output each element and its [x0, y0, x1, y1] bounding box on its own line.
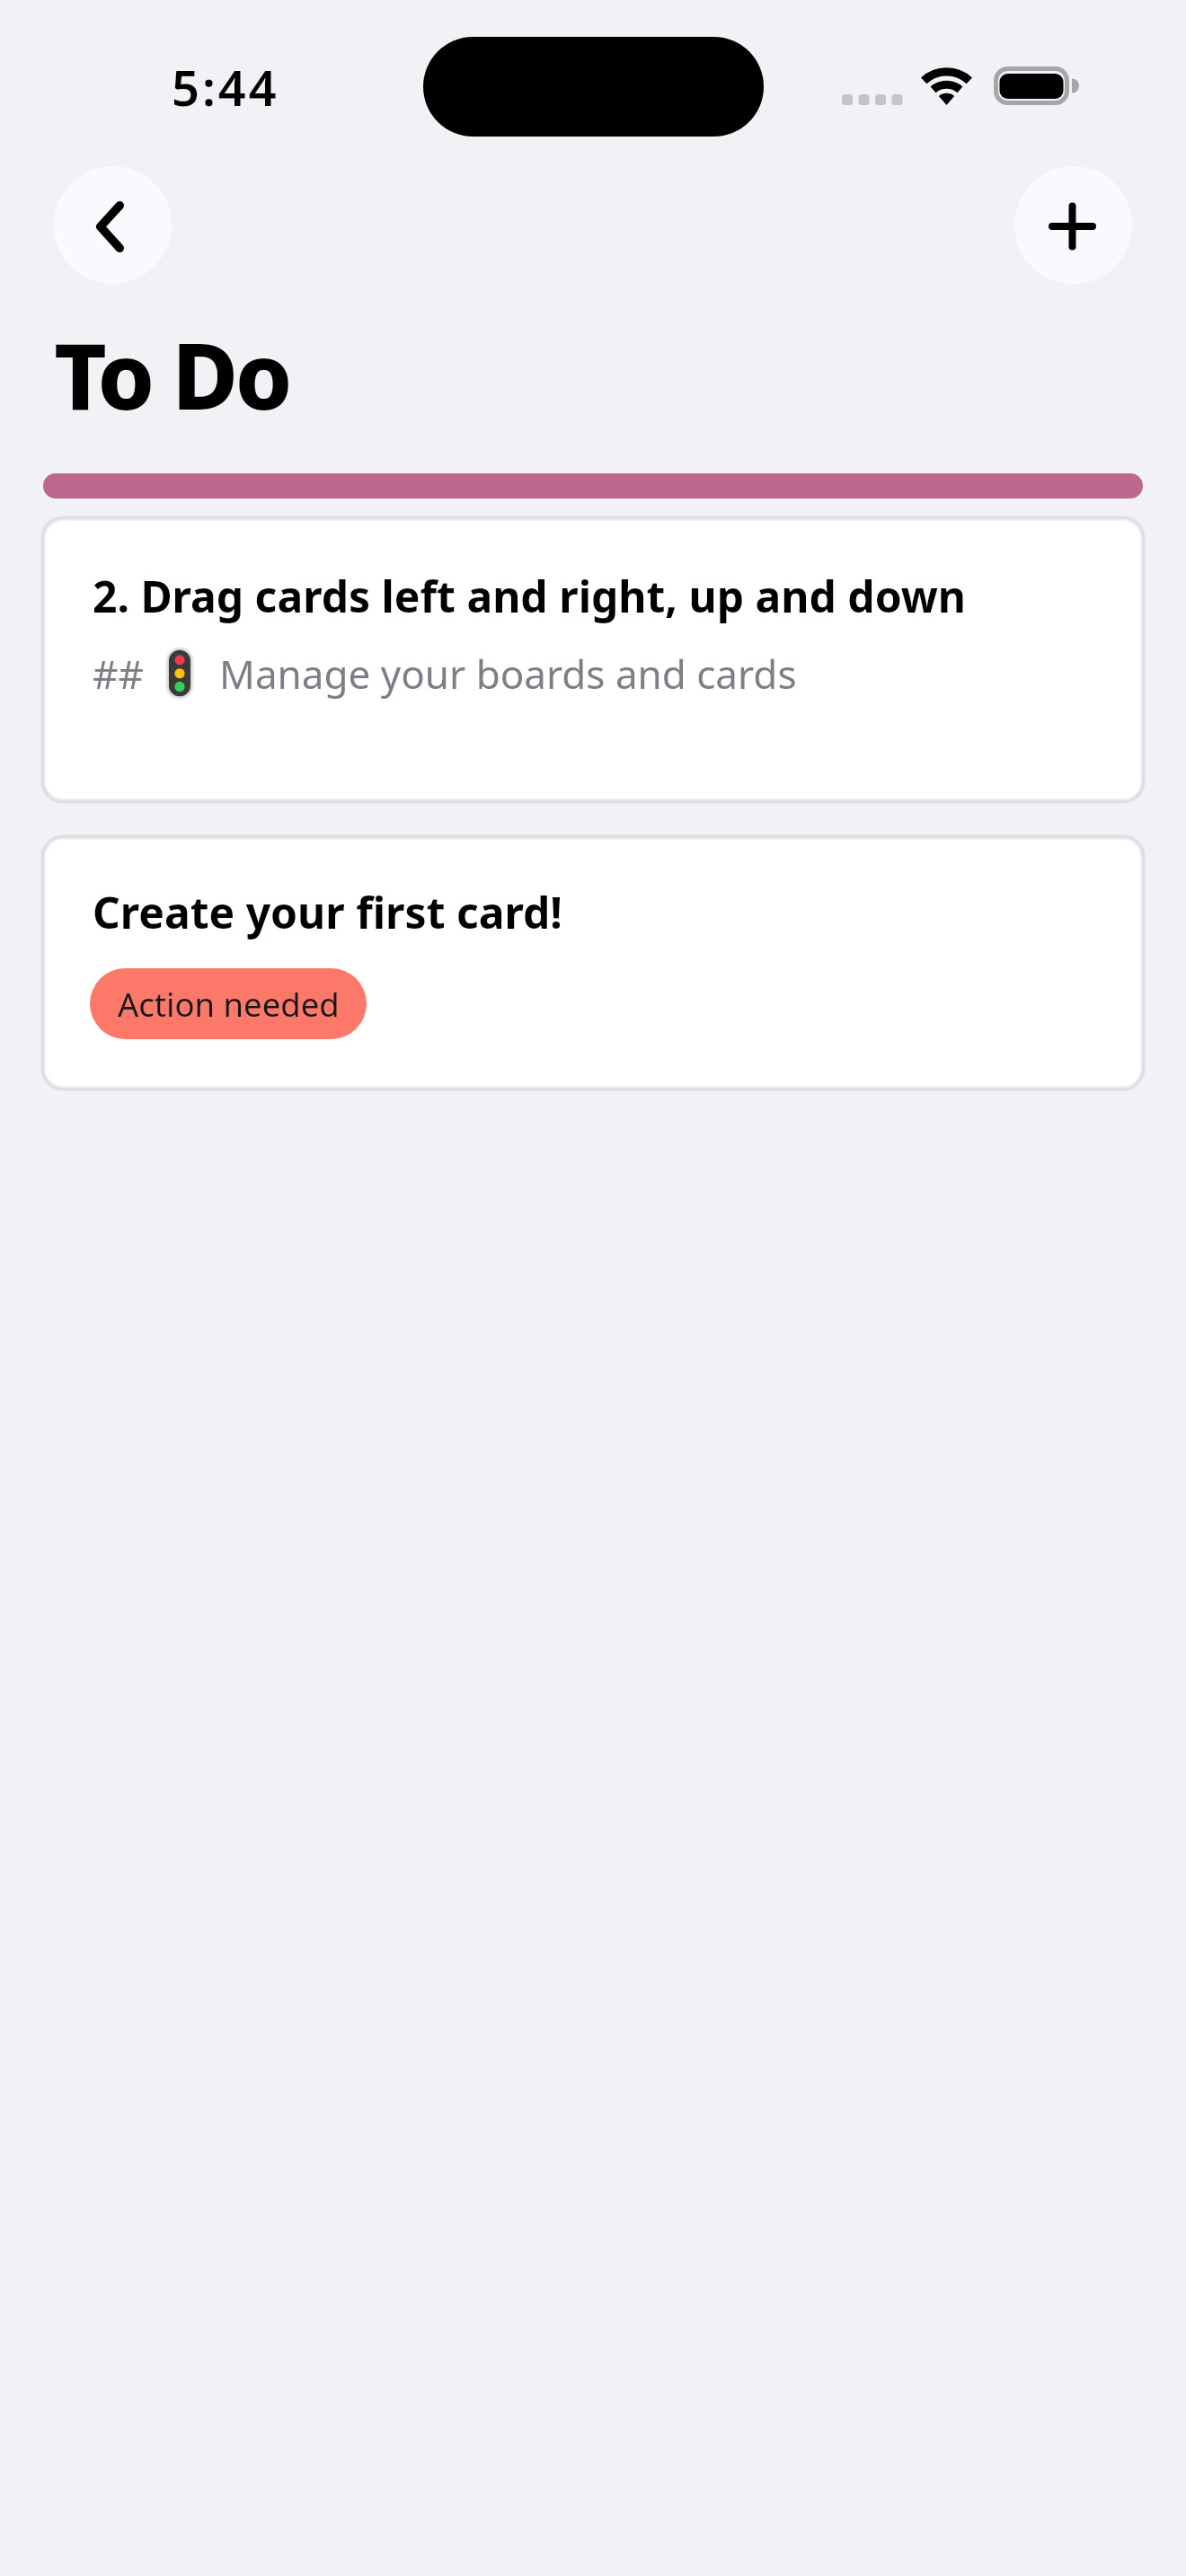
button[interactable]: Action needed: [90, 968, 367, 1039]
staticText: 2. Drag cards left and right, up and dow…: [93, 567, 966, 625]
staticText: To Do: [54, 313, 289, 437]
staticText: Manage your boards and cards: [219, 647, 797, 701]
button[interactable]: Create your first card!: [43, 837, 1143, 1089]
staticText: 5:44: [172, 54, 279, 120]
button[interactable]: Back: [54, 166, 172, 284]
button[interactable]: List colour: [43, 473, 1143, 498]
staticText: Create your first card!: [93, 883, 562, 941]
staticText: Action needed: [118, 982, 340, 1027]
staticText: ##: [93, 647, 144, 701]
button[interactable]: Add card: [1014, 166, 1132, 284]
button[interactable]: 2. Drag cards left and right, up and dow…: [43, 518, 1143, 801]
